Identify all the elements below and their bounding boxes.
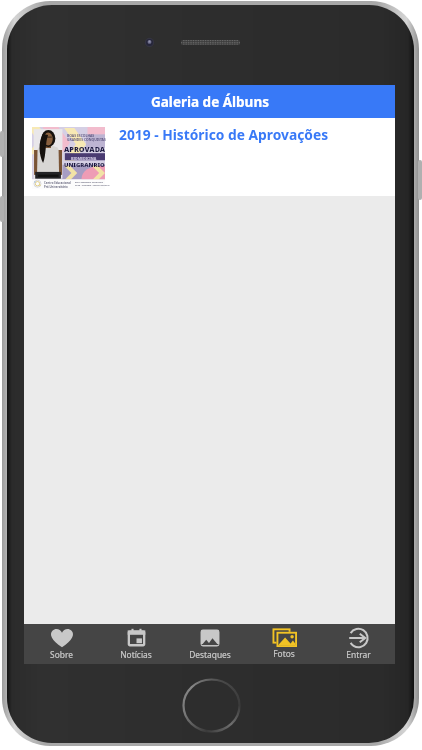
staticText: Sobre [50, 649, 73, 660]
staticText: Galeria de Álbuns [151, 93, 269, 111]
staticText: 2019 - Histórico de Aprovações [119, 125, 329, 144]
button[interactable]: Entrar [321, 624, 395, 664]
staticText: APROVADA [64, 144, 106, 154]
staticText: Notícias [120, 649, 152, 660]
button[interactable]: BOAS ESCOLHAS GRANDES CONQUISTAS [24, 118, 395, 196]
staticText: UNIGRANRIO [64, 161, 105, 169]
staticText: BIOMEDICINA [71, 156, 97, 161]
button[interactable]: Fotos [247, 624, 321, 664]
staticText: Entrar [346, 649, 371, 660]
staticText: Centro Educacional Pré-Universitário [44, 181, 71, 188]
button[interactable]: Notícias [99, 624, 173, 664]
staticText: BOAS ESCOLHAS GRANDES CONQUISTAS [67, 133, 106, 142]
staticText: Destaques [189, 649, 231, 660]
staticText: Fotos [273, 648, 295, 659]
staticText: RUA AMERICO VESPUCIO N 50 - CENTRO - NOV… [75, 181, 110, 187]
button[interactable]: Sobre [24, 624, 99, 664]
button[interactable]: Destaques [173, 624, 247, 664]
